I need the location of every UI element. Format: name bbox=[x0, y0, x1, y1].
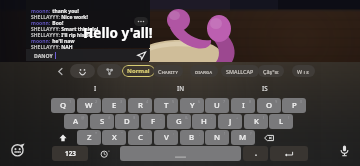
button[interactable]: U bbox=[205, 98, 229, 113]
button[interactable]: SMALLCAP bbox=[221, 65, 259, 77]
button[interactable]: I bbox=[231, 98, 255, 113]
staticText: 1 bbox=[69, 99, 72, 104]
staticText: W bbox=[85, 100, 93, 111]
button[interactable]: C bbox=[128, 130, 152, 145]
button[interactable]: Q bbox=[51, 98, 75, 113]
staticText: 5 bbox=[172, 99, 175, 104]
staticText: + bbox=[236, 115, 239, 120]
staticText: 2 bbox=[95, 99, 98, 104]
staticText: R bbox=[138, 100, 143, 111]
staticText: " bbox=[121, 131, 123, 136]
button[interactable]: L bbox=[269, 114, 293, 129]
staticText: # bbox=[108, 115, 111, 120]
staticText: J bbox=[229, 116, 232, 127]
button[interactable]: Back bbox=[54, 65, 66, 77]
button[interactable]: More options bbox=[134, 17, 148, 26]
staticText: 4 bbox=[146, 99, 149, 104]
staticText: 9 bbox=[275, 99, 278, 104]
staticText: ( bbox=[263, 115, 265, 120]
button[interactable]: Stickers bbox=[70, 64, 95, 78]
staticText: G bbox=[176, 116, 182, 127]
staticText: @ bbox=[81, 115, 85, 120]
button[interactable]: Emoji bbox=[92, 146, 118, 161]
button[interactable]: F bbox=[141, 114, 165, 129]
button[interactable]: Space bbox=[120, 146, 241, 161]
button[interactable]: B bbox=[180, 130, 204, 145]
button[interactable]: Voice input bbox=[334, 140, 354, 160]
button[interactable]: O bbox=[257, 98, 281, 113]
button[interactable]: ᴅɪᴀʀɢᴀ bbox=[190, 65, 218, 77]
button[interactable]: 123 bbox=[52, 146, 88, 161]
staticText: I bbox=[94, 84, 97, 92]
staticText: K bbox=[254, 116, 259, 127]
staticText: moonn: bbox=[31, 38, 51, 44]
button[interactable]: DANOY bbox=[26, 49, 150, 61]
button[interactable]: E bbox=[102, 98, 126, 113]
staticText: 8 bbox=[249, 99, 252, 104]
staticText: H bbox=[201, 116, 207, 127]
button[interactable]: W bbox=[77, 98, 101, 113]
staticText: I bbox=[242, 100, 245, 111]
button[interactable]: Normal bbox=[122, 65, 155, 77]
button[interactable]: Sticker pack bbox=[97, 64, 122, 78]
staticText: W ı ɛ bbox=[297, 68, 310, 75]
staticText: ? bbox=[250, 131, 252, 136]
staticText: V bbox=[164, 132, 169, 143]
button[interactable]: Keyboard settings bbox=[8, 140, 27, 159]
staticText: ) bbox=[288, 115, 290, 120]
button[interactable]: J bbox=[218, 114, 242, 129]
button[interactable]: Çãş°ıε bbox=[258, 65, 284, 77]
button[interactable]: Period bbox=[243, 146, 268, 161]
staticText: SHELLAYYY: bbox=[31, 14, 60, 20]
staticText: he'll naw bbox=[51, 38, 75, 44]
button[interactable]: S bbox=[90, 114, 114, 129]
staticText: Z bbox=[87, 132, 92, 143]
button[interactable]: T bbox=[154, 98, 178, 113]
button[interactable]: I bbox=[73, 81, 117, 95]
button[interactable]: P bbox=[282, 98, 306, 113]
button[interactable]: X bbox=[102, 130, 126, 145]
button[interactable]: Shift bbox=[51, 130, 75, 145]
staticText: moonn: bbox=[31, 20, 51, 26]
staticText: ᴅɪᴀʀɢᴀ bbox=[195, 68, 213, 75]
button[interactable]: Backspace bbox=[257, 130, 281, 145]
staticText: Cʜᴀʀɪᴛʏ bbox=[158, 68, 178, 75]
staticText: Hello y'all! bbox=[83, 24, 153, 42]
button[interactable]: Enter bbox=[270, 146, 308, 161]
staticText: ; bbox=[199, 131, 201, 136]
button[interactable]: Z bbox=[77, 130, 101, 145]
staticText: S bbox=[100, 116, 105, 127]
button[interactable]: IS bbox=[243, 81, 287, 95]
button[interactable]: IN bbox=[158, 81, 202, 95]
button[interactable]: W ı ɛ bbox=[292, 65, 315, 77]
button[interactable]: G bbox=[167, 114, 191, 129]
button[interactable]: K bbox=[244, 114, 268, 129]
button[interactable]: A bbox=[64, 114, 88, 129]
staticText: F bbox=[151, 116, 156, 127]
staticText: Çãş°ıε bbox=[263, 68, 279, 75]
staticText: DANOY bbox=[34, 52, 53, 59]
button[interactable]: V bbox=[154, 130, 178, 145]
staticText: thank you! bbox=[51, 8, 80, 14]
staticText: & bbox=[185, 115, 188, 120]
staticText: NAH bbox=[60, 44, 73, 50]
staticText: Q bbox=[60, 100, 67, 111]
staticText: 0 bbox=[300, 99, 303, 104]
button[interactable]: N bbox=[205, 130, 229, 145]
button[interactable]: Cʜᴀʀɪᴛʏ bbox=[153, 65, 183, 77]
staticText: D bbox=[124, 116, 130, 127]
staticText: IS bbox=[262, 84, 268, 92]
staticText: P bbox=[292, 100, 297, 111]
staticText: SMALLCAP bbox=[226, 68, 254, 75]
staticText: Nice work! bbox=[60, 14, 88, 20]
button[interactable]: M bbox=[231, 130, 255, 145]
button[interactable]: Y bbox=[180, 98, 204, 113]
staticText: L bbox=[279, 116, 284, 127]
button[interactable]: R bbox=[128, 98, 152, 113]
button[interactable]: H bbox=[192, 114, 216, 129]
staticText: SHELLAYYY: bbox=[31, 32, 60, 38]
button[interactable]: D bbox=[115, 114, 139, 129]
staticText: O bbox=[266, 100, 273, 111]
